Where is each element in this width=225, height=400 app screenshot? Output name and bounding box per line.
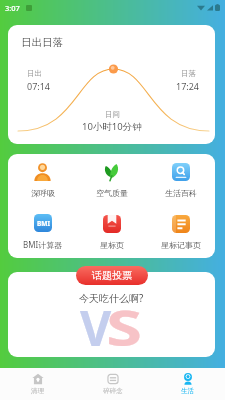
staticText: 日落: [181, 69, 196, 78]
staticText: 生活百科: [165, 188, 197, 198]
button[interactable]: 星标页: [77, 206, 146, 258]
staticText: 10小时10分钟: [82, 120, 142, 133]
button[interactable]: 碎碎念: [75, 368, 150, 400]
staticText: 话题投票: [92, 269, 132, 282]
button[interactable]: 日出日落: [8, 25, 215, 144]
button[interactable]: 深呼吸: [8, 154, 77, 206]
staticText: 日出: [27, 69, 42, 78]
button[interactable]: 星标记事页: [146, 206, 215, 258]
staticText: 空气质量: [96, 188, 128, 198]
button[interactable]: V: [8, 272, 215, 357]
staticText: 日间: [105, 110, 120, 119]
staticText: 生活: [181, 387, 194, 395]
staticText: 今天吃什么啊?: [79, 291, 144, 305]
staticText: 星标页: [100, 240, 124, 250]
staticText: S: [106, 295, 143, 357]
button[interactable]: 生活百科: [146, 154, 215, 206]
staticText: 07:14: [27, 80, 51, 92]
button[interactable]: 生活: [150, 368, 225, 400]
staticText: 17:24: [176, 80, 200, 92]
button[interactable]: 空气质量: [77, 154, 146, 206]
button[interactable]: BMI: [8, 206, 77, 258]
button[interactable]: 话题投票: [76, 266, 148, 285]
staticText: 清理: [31, 387, 44, 395]
button[interactable]: 清理: [0, 368, 75, 400]
staticText: 星标记事页: [161, 240, 201, 250]
staticText: 3:07: [5, 3, 20, 13]
staticText: 碎碎念: [103, 387, 123, 395]
staticText: 深呼吸: [31, 188, 55, 198]
staticText: 日出日落: [21, 36, 63, 49]
staticText: V: [80, 295, 112, 357]
staticText: BMI计算器: [23, 239, 63, 250]
staticText: BMI: [37, 219, 50, 228]
